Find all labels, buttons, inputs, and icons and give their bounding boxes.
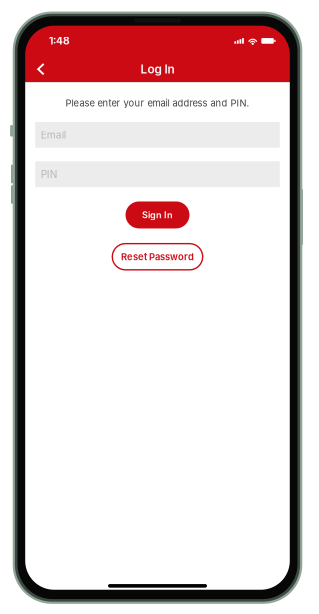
button[interactable]: Reset Password (112, 244, 203, 270)
staticText: Reset Password (121, 251, 194, 262)
staticText: Please enter your email address and PIN. (65, 97, 249, 109)
staticText: Log In (140, 62, 174, 76)
staticText: PIN (41, 168, 58, 180)
button[interactable]: Sign In (125, 201, 189, 228)
staticText: Email (41, 129, 66, 141)
staticText: Sign In (142, 209, 173, 220)
button[interactable]: Back (25, 56, 56, 82)
staticText: 1:48 (49, 35, 70, 47)
